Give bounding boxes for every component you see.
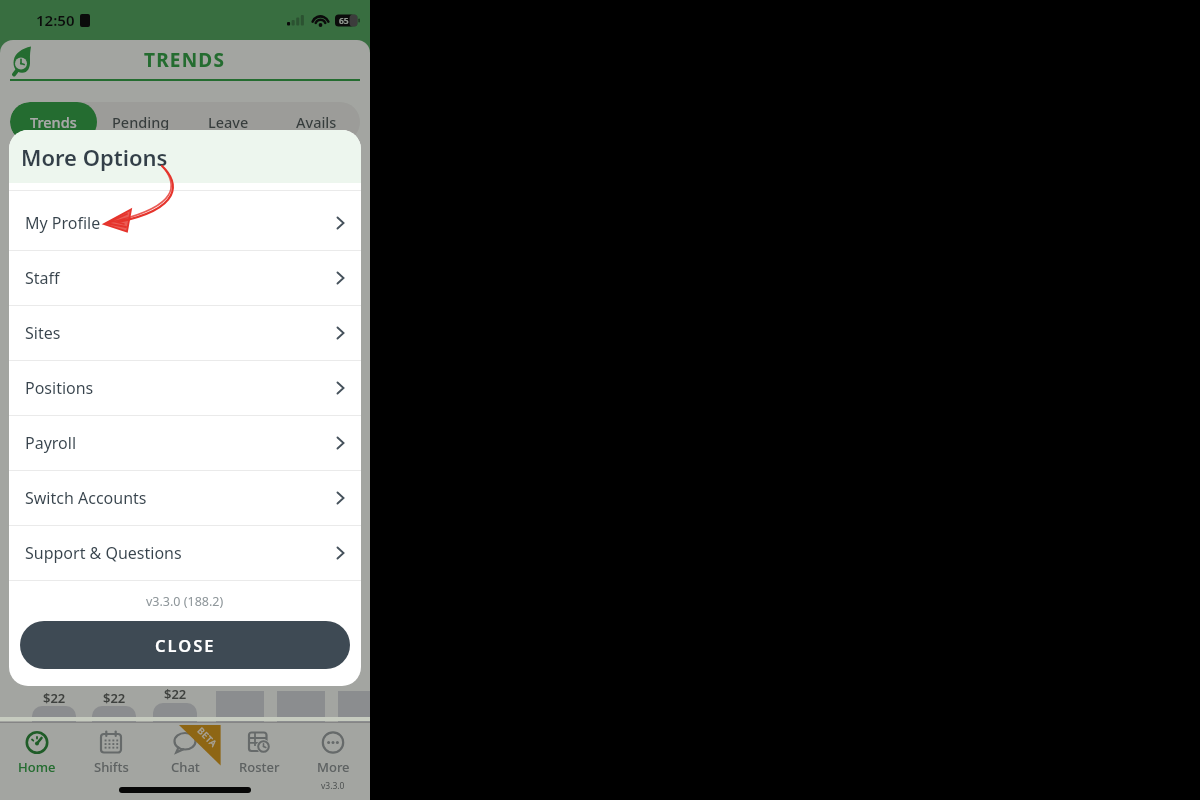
button[interactable]: More [296,730,370,792]
staticText: Chat [171,758,200,776]
staticText: Leave [208,112,249,132]
staticText: More [317,758,350,776]
button[interactable]: Trends [10,102,97,142]
button[interactable]: Staff [9,251,361,305]
button[interactable]: Positions [9,361,361,415]
staticText: Shifts [94,758,129,776]
staticText: v3.3.0 [321,780,345,792]
button[interactable]: Support & Questions [9,526,361,580]
button[interactable]: Switch Accounts [9,471,361,525]
staticText: Sites [25,322,61,344]
button[interactable]: Leave [184,102,272,142]
staticText: More Options [21,142,168,172]
staticText: v3.3.0 (188.2) [146,593,224,610]
staticText: CLOSE [155,634,216,656]
staticText: 12:50 [36,10,75,30]
button[interactable]: My Profile [9,196,361,250]
staticText: $22 [103,689,126,707]
staticText: Roster [239,758,280,776]
staticText: $22 [43,689,66,707]
staticText: Positions [25,377,94,399]
button[interactable]: Shifts [74,730,148,776]
button[interactable]: Avails [272,102,360,142]
button[interactable]: Roster [222,730,296,776]
button[interactable]: Pending [97,102,184,142]
staticText: Avails [296,112,337,132]
button[interactable]: CLOSE [20,621,350,669]
button[interactable]: Sites [9,306,361,360]
staticText: My Profile [25,212,101,234]
staticText: Trends [30,112,77,132]
staticText: BETA [195,724,221,750]
button[interactable]: Chat [148,730,222,776]
staticText: Support & Questions [25,542,182,564]
staticText: Switch Accounts [25,487,147,509]
staticText: TRENDS [144,47,226,73]
staticText: $22 [164,685,187,703]
button[interactable]: Home [0,730,74,776]
staticText: Payroll [25,432,77,454]
staticText: Home [18,758,56,776]
staticText: 65 [339,15,349,27]
button[interactable]: Payroll [9,416,361,470]
staticText: Staff [25,267,60,289]
staticText: Pending [112,112,170,132]
